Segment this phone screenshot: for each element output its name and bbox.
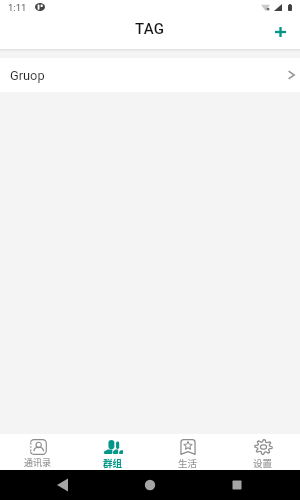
- button[interactable]: Add: [268, 20, 292, 44]
- button[interactable]: 群组: [75, 435, 150, 470]
- staticText: Gruop: [10, 68, 45, 83]
- staticText: 设置: [253, 456, 273, 470]
- staticText: 通讯录: [24, 456, 52, 469]
- button[interactable]: 设置: [225, 435, 300, 470]
- staticText: 群组: [103, 456, 123, 470]
- button[interactable]: 生活: [150, 435, 225, 470]
- staticText: 生活: [178, 456, 198, 470]
- staticText: TAG: [135, 20, 165, 38]
- button[interactable]: Gruop: [0, 58, 300, 92]
- button[interactable]: 通讯录: [0, 435, 75, 469]
- staticText: 1:11: [8, 2, 27, 13]
